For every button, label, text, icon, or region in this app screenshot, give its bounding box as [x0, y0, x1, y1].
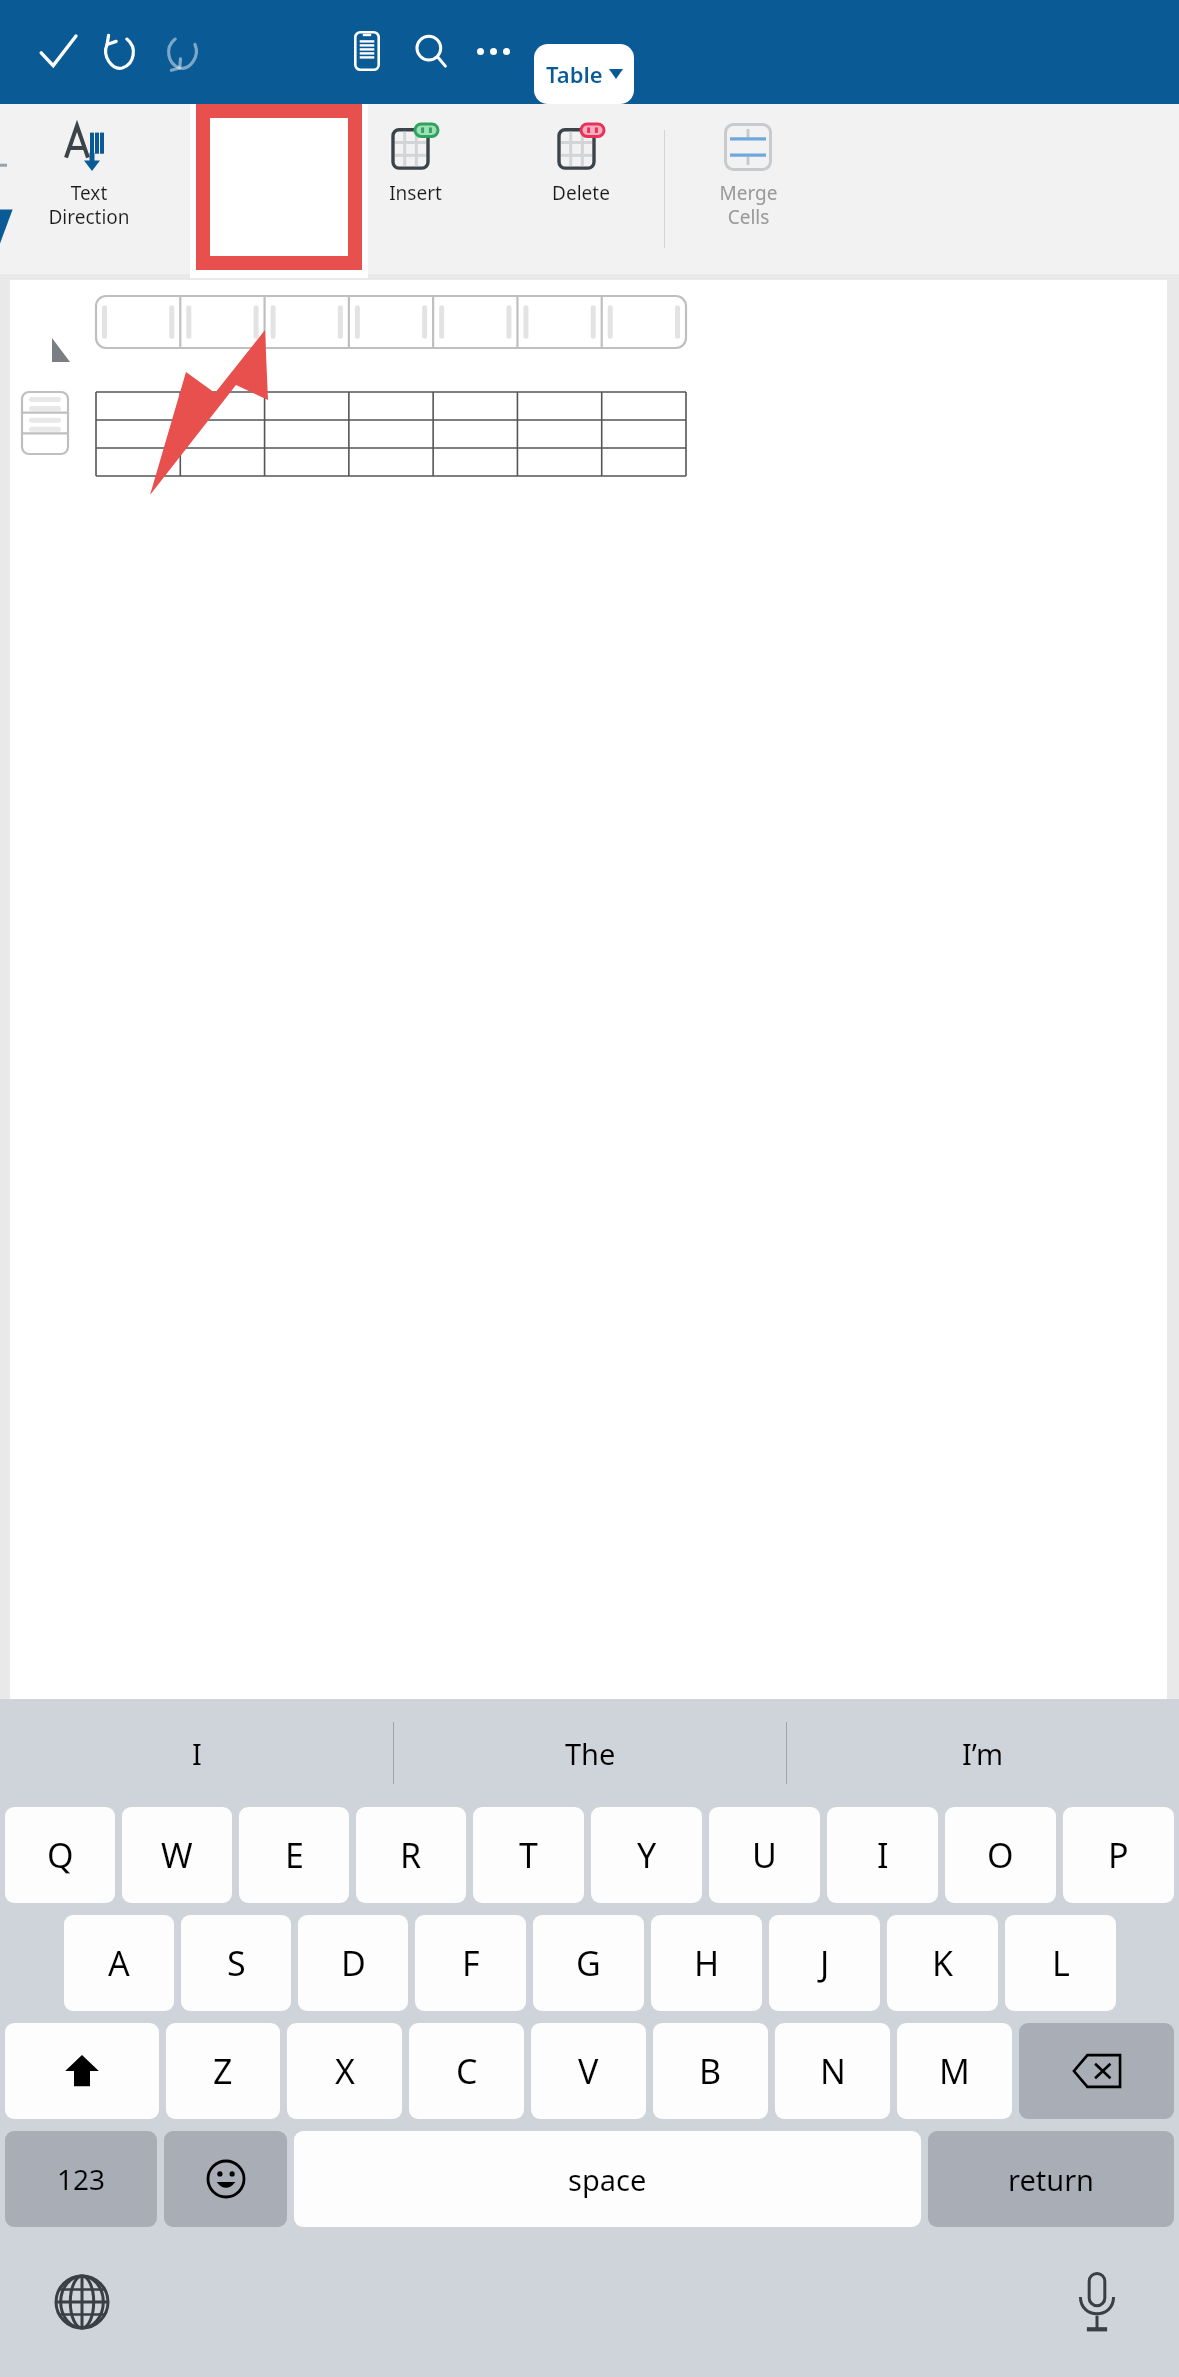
staticText: T — [519, 1832, 538, 1878]
button[interactable]: Done — [24, 18, 92, 86]
button[interactable]: Emoji — [164, 2131, 287, 2227]
staticText: E — [285, 1832, 304, 1878]
button[interactable]: Shift — [5, 2023, 159, 2119]
button[interactable]: Delete — [498, 104, 664, 274]
button[interactable]: T — [473, 1807, 584, 1903]
staticText: S — [227, 1940, 246, 1986]
button[interactable]: Redo — [146, 16, 218, 88]
button[interactable]: Text Direction — [14, 104, 164, 274]
button[interactable]: J — [769, 1915, 880, 2011]
button[interactable]: Insert — [332, 104, 498, 274]
button[interactable]: Z — [166, 2023, 280, 2119]
button[interactable]: Table — [534, 44, 634, 104]
staticText: I — [192, 1734, 202, 1773]
staticText: N — [820, 2048, 846, 2094]
staticText: W — [161, 1832, 193, 1878]
button[interactable]: Read aloud — [334, 18, 400, 84]
button[interactable]: K — [887, 1915, 998, 2011]
staticText: space — [568, 2160, 647, 2199]
button[interactable]: P — [1063, 1807, 1174, 1903]
staticText: G — [576, 1940, 601, 1986]
button[interactable]: space — [294, 2131, 921, 2227]
staticText: J — [820, 1940, 830, 1986]
button[interactable]: F — [415, 1915, 526, 2011]
staticText: Merge Cells — [719, 180, 778, 229]
button[interactable]: N — [775, 2023, 890, 2119]
staticText: P — [1108, 1832, 1129, 1878]
button[interactable]: C — [409, 2023, 524, 2119]
staticText: X — [335, 2048, 355, 2094]
button[interactable]: W — [122, 1807, 232, 1903]
button[interactable]: Undo — [84, 16, 156, 88]
button[interactable]: Backspace — [1019, 2023, 1174, 2119]
button[interactable]: Y — [591, 1807, 702, 1903]
button[interactable]: M — [897, 2023, 1012, 2119]
button[interactable]: H — [651, 1915, 762, 2011]
staticText: Q — [47, 1832, 74, 1878]
staticText: I’m — [962, 1734, 1004, 1773]
staticText: 123 — [57, 2160, 106, 2198]
staticText: return — [1008, 2160, 1095, 2199]
button[interactable]: G — [533, 1915, 644, 2011]
button[interactable]: 123 — [5, 2131, 157, 2227]
button[interactable]: S — [181, 1915, 291, 2011]
button[interactable]: E — [239, 1807, 349, 1903]
staticText: H — [694, 1940, 720, 1986]
staticText: V — [578, 2048, 599, 2094]
staticText: O — [987, 1832, 1014, 1878]
staticText: The — [565, 1734, 616, 1773]
staticText: Delete — [552, 180, 610, 206]
staticText: F — [462, 1940, 480, 1986]
button[interactable]: L — [1005, 1915, 1116, 2011]
staticText: D — [341, 1940, 366, 1986]
staticText: K — [932, 1940, 954, 1986]
button[interactable]: I’m — [787, 1699, 1179, 1807]
button[interactable]: O — [945, 1807, 1056, 1903]
staticText: M — [939, 2048, 970, 2094]
button[interactable]: Change keyboard — [46, 2266, 118, 2338]
staticText: B — [699, 2048, 722, 2094]
staticText: I — [877, 1832, 889, 1878]
staticText: View Gridlines — [209, 180, 289, 229]
staticText: Y — [637, 1832, 657, 1878]
staticText: A — [108, 1940, 130, 1986]
button[interactable]: X — [287, 2023, 402, 2119]
button[interactable]: R — [356, 1807, 466, 1903]
button[interactable]: return — [928, 2131, 1174, 2227]
staticText: U — [752, 1832, 777, 1878]
button[interactable]: The — [394, 1699, 786, 1807]
button[interactable]: D — [298, 1915, 408, 2011]
button[interactable]: Dictate — [1061, 2266, 1133, 2338]
button[interactable]: View Gridlines — [166, 104, 332, 274]
button[interactable]: Merge Cells — [665, 104, 831, 274]
button[interactable]: V — [531, 2023, 646, 2119]
button[interactable]: A — [64, 1915, 174, 2011]
button[interactable]: Search — [398, 18, 464, 84]
staticText: Z — [213, 2048, 233, 2094]
staticText: Insert — [389, 180, 442, 206]
staticText: L — [1052, 1940, 1070, 1986]
staticText: C — [456, 2048, 478, 2094]
staticText: Table — [546, 59, 603, 89]
button[interactable]: U — [709, 1807, 820, 1903]
button[interactable]: Q — [5, 1807, 115, 1903]
button[interactable]: I — [827, 1807, 938, 1903]
staticText: Text Direction — [48, 180, 130, 229]
button[interactable]: More options — [460, 18, 526, 84]
button[interactable]: B — [653, 2023, 768, 2119]
staticText: R — [400, 1832, 422, 1878]
button[interactable]: I — [0, 1699, 393, 1807]
